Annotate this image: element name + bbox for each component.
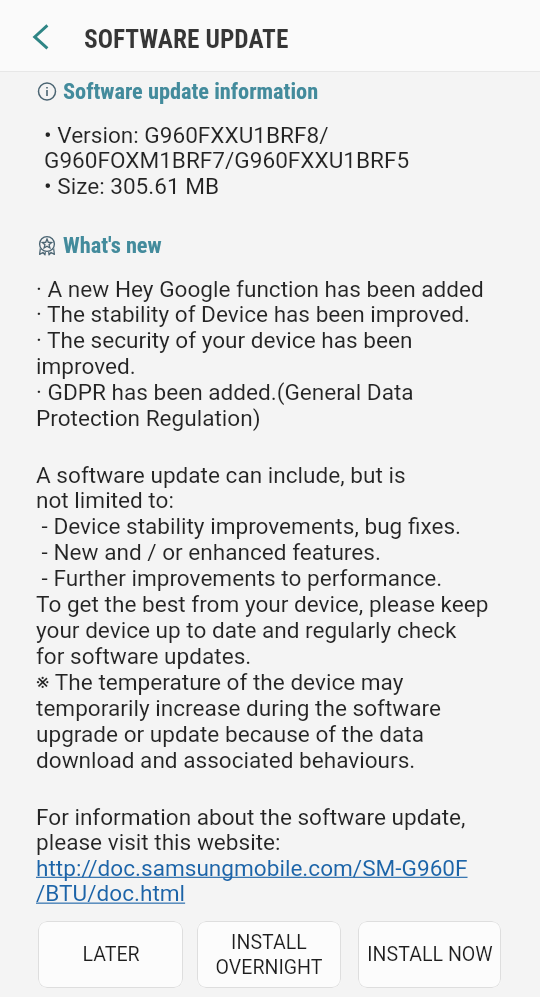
staticText: A software update can include, but is no…	[36, 462, 524, 774]
staticText: • Version: G960FXXU1BRF8/ G960FOXM1BRF7/…	[44, 122, 520, 200]
staticText: INSTALL OVERNIGHT	[215, 931, 323, 979]
staticText: Software update information	[63, 78, 319, 104]
staticText: LATER	[82, 943, 140, 966]
button[interactable]: http://doc.samsungmobile.com/SM-G960F /B…	[0, 855, 540, 907]
staticText: SOFTWARE UPDATE	[84, 24, 289, 54]
staticText: For information about the software updat…	[36, 804, 524, 856]
button[interactable]: INSTALL OVERNIGHT	[197, 921, 341, 988]
staticText: · A new Hey Google function has been add…	[36, 276, 524, 432]
button[interactable]: Navigate up	[0, 0, 68, 71]
staticText: INSTALL NOW	[367, 943, 493, 966]
button[interactable]: INSTALL NOW	[358, 921, 501, 988]
staticText: What's new	[63, 232, 162, 258]
button[interactable]: LATER	[38, 921, 183, 988]
